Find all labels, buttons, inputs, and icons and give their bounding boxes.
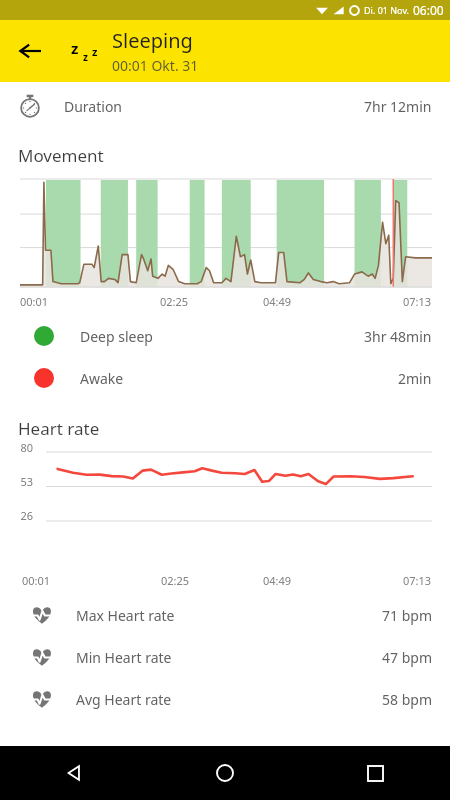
staticText: 7hr 12min (364, 97, 432, 116)
button[interactable]: Deep sleep (0, 315, 450, 357)
button[interactable]: Awake (0, 357, 450, 399)
staticText: Heart rate (18, 417, 100, 440)
button[interactable]: Recent apps (300, 746, 450, 800)
staticText: Movement (18, 144, 104, 167)
button[interactable]: Min Heart rate (0, 636, 450, 678)
staticText: Sleeping (112, 27, 193, 54)
button[interactable]: Duration (0, 88, 450, 124)
staticText: 00:01 Okt. 31 (112, 56, 199, 75)
staticText: 3hr 48min (364, 327, 432, 346)
staticText: Deep sleep (80, 327, 153, 346)
staticText: 06:00 (413, 2, 444, 18)
staticText: z (83, 50, 88, 64)
staticText: 07:13 (403, 294, 432, 309)
staticText: 80 (20, 440, 33, 455)
staticText: Max Heart rate (76, 606, 175, 625)
staticText: Awake (80, 369, 124, 388)
staticText: z (92, 44, 98, 59)
button[interactable]: Home (150, 746, 300, 800)
staticText: 04:49 (263, 294, 292, 309)
staticText: 2min (398, 369, 432, 388)
staticText: Di. 01 Nov. (364, 4, 410, 16)
button[interactable]: Back (8, 29, 52, 73)
staticText: 07:13 (403, 573, 432, 588)
staticText: 58 bpm (382, 690, 432, 709)
staticText: z (71, 38, 79, 58)
staticText: 04:49 (263, 573, 292, 588)
staticText: Min Heart rate (76, 648, 172, 667)
staticText: 00:01 (22, 573, 51, 588)
staticText: 26 (20, 508, 33, 523)
staticText: 71 bpm (382, 606, 432, 625)
staticText: 02:25 (161, 573, 190, 588)
staticText: 02:25 (160, 294, 189, 309)
staticText: 53 (20, 474, 33, 489)
staticText: Avg Heart rate (76, 690, 172, 709)
button[interactable]: Max Heart rate (0, 594, 450, 636)
button[interactable]: Back (0, 746, 150, 800)
staticText: 00:01 (20, 294, 49, 309)
button[interactable]: Avg Heart rate (0, 678, 450, 720)
staticText: Duration (64, 97, 123, 116)
staticText: 47 bpm (382, 648, 432, 667)
